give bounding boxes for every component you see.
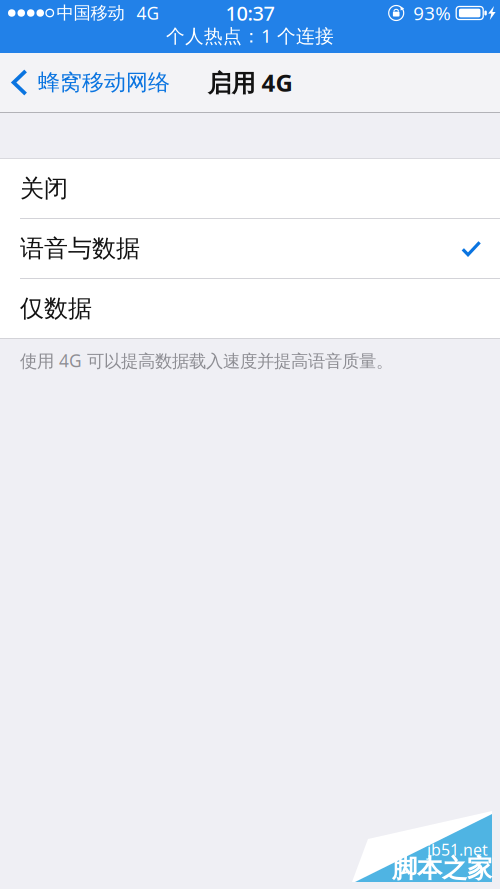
staticText: 关闭 (20, 174, 68, 203)
button[interactable]: 语音与数据 (0, 219, 500, 278)
staticText: 仅数据 (20, 294, 92, 323)
staticText: 语音与数据 (20, 234, 140, 263)
staticText: 个人热点：1 个连接 (166, 23, 334, 48)
staticText: 93% (413, 1, 451, 25)
staticText: 中国移动 (56, 2, 124, 24)
staticText: 脚本之家 (392, 853, 492, 884)
button[interactable]: 仅数据 (0, 279, 500, 338)
staticText: 使用 4G 可以提高数据载入速度并提高语音质量。 (20, 349, 393, 372)
staticText: 10:37 (225, 0, 274, 26)
staticText: jb51.net (427, 839, 488, 860)
button[interactable]: 关闭 (0, 159, 500, 218)
button[interactable]: 蜂窝移动网络 (0, 53, 182, 112)
staticText: 启用 4G (207, 67, 292, 98)
staticText: 蜂窝移动网络 (38, 69, 170, 96)
staticText: 4G (136, 1, 159, 24)
